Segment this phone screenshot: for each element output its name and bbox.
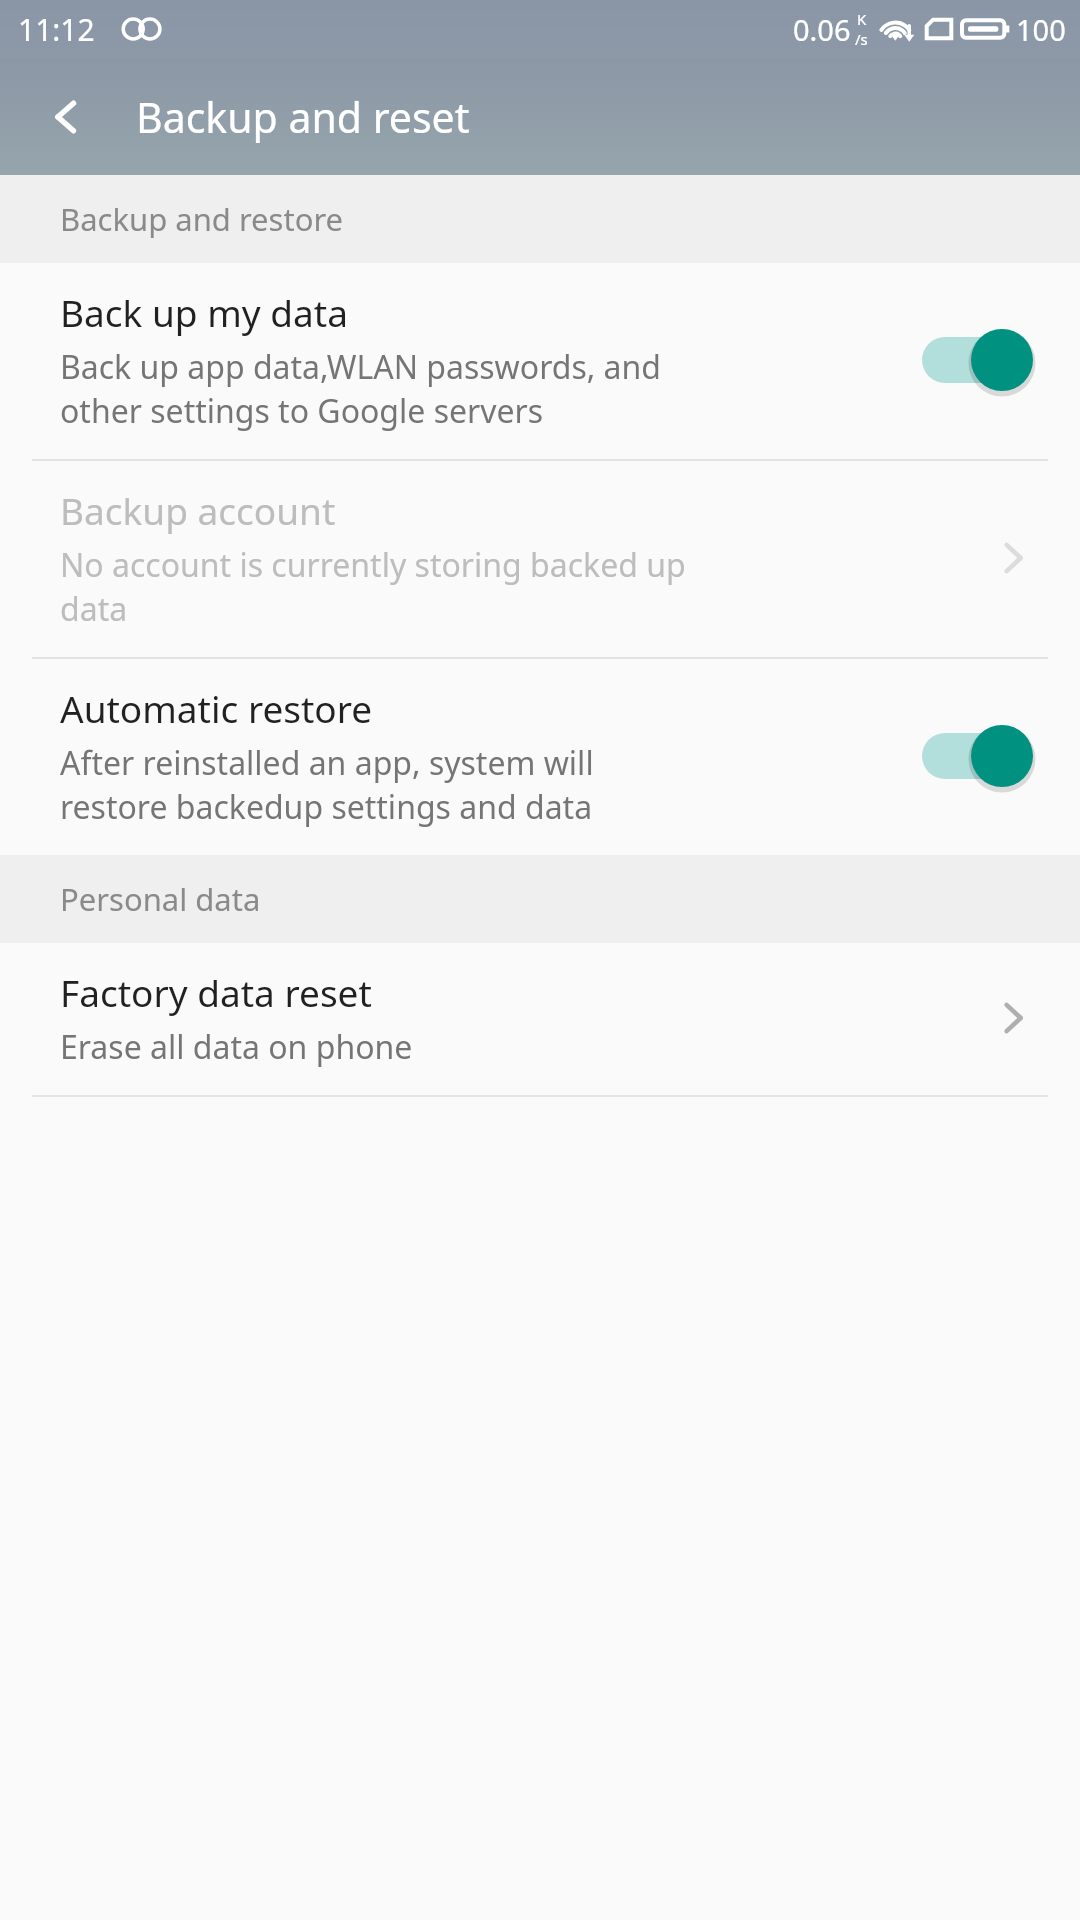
- staticText: Backup and restore: [60, 198, 344, 240]
- staticText: Back up app data,WLAN passwords, and: [60, 345, 662, 389]
- staticText: Erase all data on phone: [60, 1025, 413, 1069]
- button[interactable]: Back: [20, 69, 116, 165]
- staticText: 11:12: [18, 9, 95, 50]
- staticText: Back up my data: [60, 287, 348, 337]
- staticText: other settings to Google servers: [60, 389, 544, 433]
- staticText: Backup account: [60, 485, 336, 535]
- staticText: Automatic restore: [60, 683, 373, 733]
- staticText: Backup and reset: [136, 89, 470, 145]
- staticText: Factory data reset: [60, 967, 372, 1017]
- staticText: restore backedup settings and data: [60, 785, 593, 829]
- staticText: After reinstalled an app, system will: [60, 741, 594, 785]
- staticText: data: [60, 587, 128, 631]
- staticText: 100: [1016, 10, 1066, 49]
- staticText: 0.06: [793, 10, 851, 49]
- staticText: /s: [855, 29, 868, 49]
- button[interactable]: Toggle: [922, 720, 1046, 792]
- button[interactable]: Backup account: [0, 461, 1080, 657]
- staticText: K: [857, 9, 867, 29]
- staticText: Personal data: [60, 878, 261, 920]
- staticText: No account is currently storing backed u…: [60, 543, 686, 587]
- button[interactable]: Back up my data: [0, 263, 1080, 459]
- button[interactable]: Factory data reset: [0, 943, 1080, 1095]
- button[interactable]: Automatic restore: [0, 659, 1080, 855]
- button[interactable]: Toggle: [922, 324, 1046, 396]
